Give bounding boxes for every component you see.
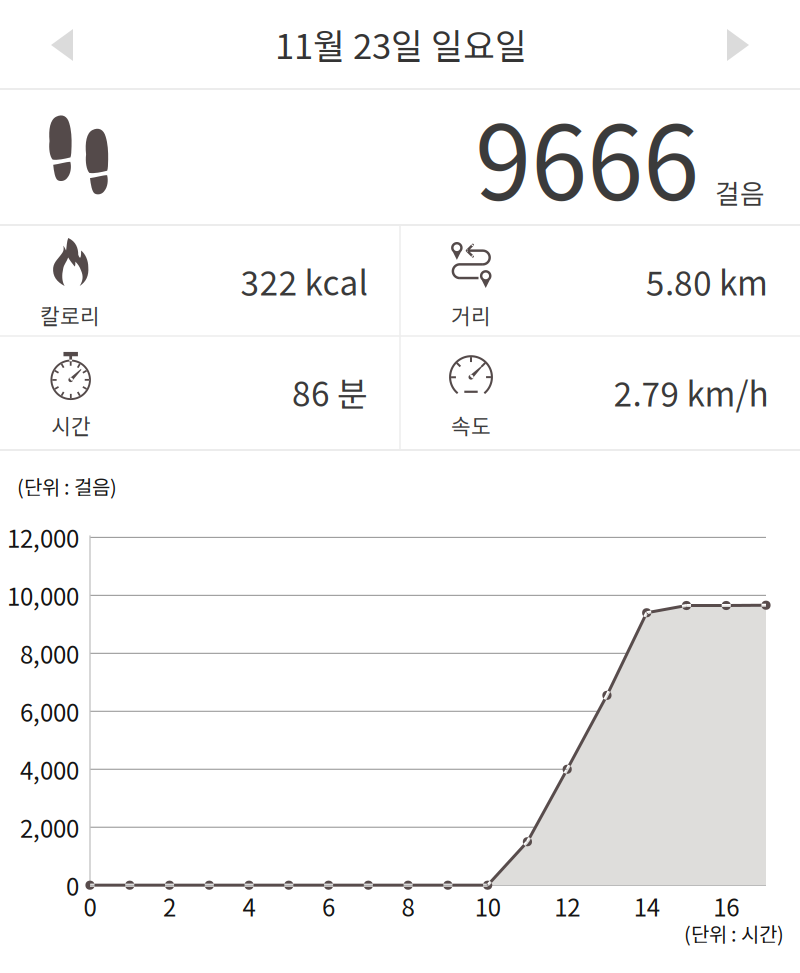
staticText: 2.79 km/h <box>613 368 768 416</box>
staticText: (단위 : 걸음) <box>17 471 117 500</box>
staticText: 걸음 <box>715 173 765 211</box>
staticText: 6,000 <box>20 694 79 729</box>
staticText: (단위 : 시간) <box>684 918 784 947</box>
staticText: 4,000 <box>20 752 79 787</box>
staticText: 0 <box>66 868 79 903</box>
staticText: 4 <box>243 889 256 923</box>
staticText: 8,000 <box>20 636 79 671</box>
staticText: 12 <box>554 889 580 923</box>
staticText: 16 <box>713 889 739 923</box>
staticText: 5.80 km <box>646 257 768 305</box>
staticText: 8 <box>402 889 415 923</box>
staticText: 0 <box>83 889 96 923</box>
staticText: 속도 <box>451 410 491 440</box>
staticText: 10,000 <box>7 578 79 613</box>
staticText: 12,000 <box>7 520 79 555</box>
staticText: 6 <box>322 889 335 923</box>
staticText: 14 <box>634 889 660 923</box>
staticText: 10 <box>475 889 501 923</box>
button[interactable]: 이전 날 <box>7 1 117 89</box>
staticText: 칼로리 <box>40 300 100 330</box>
button[interactable]: 다음 날 <box>683 1 793 89</box>
staticText: 86 분 <box>292 368 368 416</box>
staticText: 거리 <box>451 300 491 330</box>
staticText: 9666 <box>475 83 699 229</box>
staticText: 2 <box>163 889 176 923</box>
staticText: 11월 23일 일요일 <box>275 19 527 69</box>
staticText: 2,000 <box>20 810 79 845</box>
staticText: 322 kcal <box>240 257 367 305</box>
staticText: 시간 <box>51 410 91 440</box>
